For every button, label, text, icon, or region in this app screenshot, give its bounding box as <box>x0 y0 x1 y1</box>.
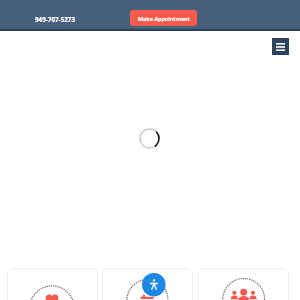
button[interactable]: Our team <box>198 268 289 300</box>
staticText: Make Appointment <box>138 15 190 22</box>
button[interactable]: Make Appointment <box>130 10 197 26</box>
button[interactable]: Open navigation menu <box>272 38 289 55</box>
button[interactable]: Patient care <box>7 268 98 300</box>
button[interactable]: 949-707-5273 <box>35 15 76 24</box>
button[interactable]: Accessibility <box>102 268 193 300</box>
